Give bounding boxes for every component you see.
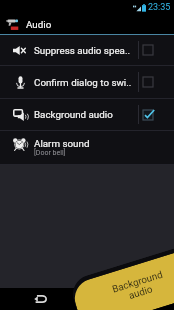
staticText: [Door bell] [34, 149, 66, 157]
staticText: Suppress audio spea.. [34, 45, 131, 56]
staticText: Background audio [110, 269, 167, 305]
staticText: Confirm dialog to swi.. [34, 77, 132, 88]
staticText: Alarm sound [34, 138, 90, 149]
staticText: Background audio [34, 109, 113, 120]
button[interactable]: Confirm dialog to swi.. [0, 66, 174, 98]
button[interactable]: Back [29, 288, 51, 310]
staticText: 23:35 [148, 2, 171, 13]
staticText: Audio [26, 19, 52, 30]
button[interactable]: Background audio [70, 247, 174, 310]
button[interactable]: Background audio [0, 99, 174, 130]
button[interactable]: Alarm sound [0, 131, 174, 164]
button[interactable]: Suppress audio spea.. [0, 35, 174, 65]
button[interactable]: Audio [0, 14, 174, 34]
